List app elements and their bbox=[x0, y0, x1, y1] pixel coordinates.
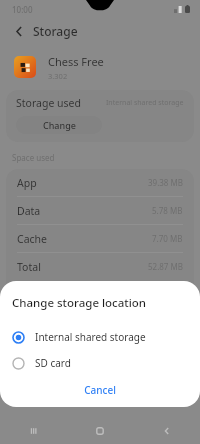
staticText: 3.302 bbox=[48, 71, 68, 81]
staticText: Internal shared storage bbox=[35, 330, 146, 344]
staticText: Data bbox=[17, 204, 41, 218]
button[interactable]: Recent apps bbox=[0, 418, 66, 444]
button[interactable]: Clear cache bbox=[107, 291, 182, 309]
button[interactable]: App bbox=[6, 169, 194, 196]
staticText: Storage bbox=[33, 23, 78, 39]
staticText: Clear data bbox=[36, 295, 75, 306]
button[interactable]: Total bbox=[6, 253, 194, 280]
staticText: Change bbox=[43, 119, 76, 131]
staticText: Clear cache bbox=[123, 295, 167, 306]
staticText: 52.87 MB bbox=[148, 261, 183, 272]
staticText: App bbox=[17, 176, 37, 190]
button[interactable]: Back bbox=[9, 21, 29, 41]
button[interactable]: Change bbox=[16, 116, 102, 134]
staticText: SD card bbox=[35, 356, 71, 370]
button[interactable]: SD card bbox=[0, 350, 200, 376]
button[interactable]: Cache bbox=[6, 225, 194, 252]
button[interactable]: Internal shared storage bbox=[0, 324, 200, 350]
staticText: 5.78 MB bbox=[152, 205, 183, 216]
staticText: Internal shared storage bbox=[106, 98, 184, 108]
button[interactable]: Data bbox=[6, 197, 194, 224]
staticText: 10:00 bbox=[12, 4, 33, 15]
staticText: Cancel bbox=[84, 383, 116, 397]
staticText: Total bbox=[17, 260, 41, 274]
staticText: 39.38 MB bbox=[148, 177, 183, 188]
button[interactable]: Cancel bbox=[72, 380, 128, 400]
staticText: Chess Free bbox=[48, 54, 104, 69]
button[interactable]: Home bbox=[66, 418, 133, 444]
button[interactable]: Back bbox=[133, 418, 200, 444]
staticText: 7.70 MB bbox=[152, 233, 183, 244]
staticText: Change storage location bbox=[12, 295, 147, 311]
staticText: Space used bbox=[12, 152, 55, 163]
staticText: Storage used bbox=[16, 96, 81, 110]
staticText: Cache bbox=[17, 232, 47, 246]
button[interactable]: Clear data bbox=[18, 291, 93, 309]
